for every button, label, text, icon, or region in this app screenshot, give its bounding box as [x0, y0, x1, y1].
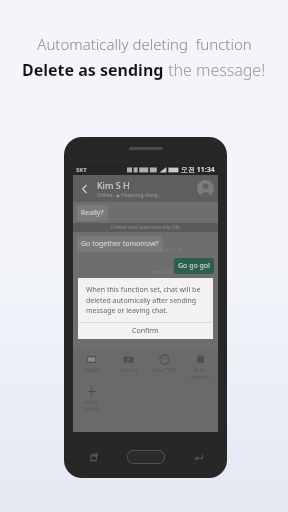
staticText: 오전 11:34 — [181, 165, 215, 175]
button[interactable]: Profile — [197, 180, 214, 197]
button[interactable]: Go go go! — [178, 261, 210, 271]
staticText: Confirm — [132, 326, 159, 336]
staticText: Send TMC — [152, 367, 176, 374]
button[interactable]: Album — [73, 354, 110, 374]
staticText: Go go go! — [178, 261, 210, 271]
button[interactable]: Confirm — [78, 323, 213, 339]
button[interactable]: Really? — [81, 208, 104, 218]
button[interactable]: Auto Deletion — [182, 354, 218, 381]
staticText: Kim S H — [97, 179, 130, 191]
staticText: Online — [97, 192, 113, 199]
button[interactable]: Recents — [86, 450, 100, 464]
staticText: Haejeong-dong. — [121, 192, 159, 199]
staticText: Delete as sending — [22, 59, 164, 81]
button[interactable]: Back — [191, 450, 205, 464]
button[interactable]: Camera — [110, 354, 146, 374]
staticText: Really? — [81, 208, 104, 218]
staticText: Delete chat automatically ON — [111, 224, 180, 231]
staticText: Automatically deleting function — [37, 34, 252, 54]
staticText: am 11:35 — [154, 269, 172, 274]
staticText: Go together tomorrow? — [81, 239, 159, 249]
staticText: Auto Deletion — [190, 367, 210, 381]
staticText: When this function set, chat will be del… — [86, 285, 205, 315]
staticText: the message! — [164, 59, 266, 81]
staticText: Album — [84, 367, 100, 374]
button[interactable]: Home — [127, 450, 165, 464]
staticText: SKT — [76, 166, 87, 174]
button[interactable]: Go together tomorrow? — [81, 239, 159, 249]
staticText: am 11:35 — [165, 247, 183, 252]
button[interactable]: Back — [77, 181, 93, 197]
staticText: Camera — [119, 367, 138, 374]
button[interactable]: Invite Friend — [73, 386, 109, 413]
button[interactable]: Send TMC — [146, 354, 182, 374]
staticText: Invite Friend — [84, 399, 99, 413]
